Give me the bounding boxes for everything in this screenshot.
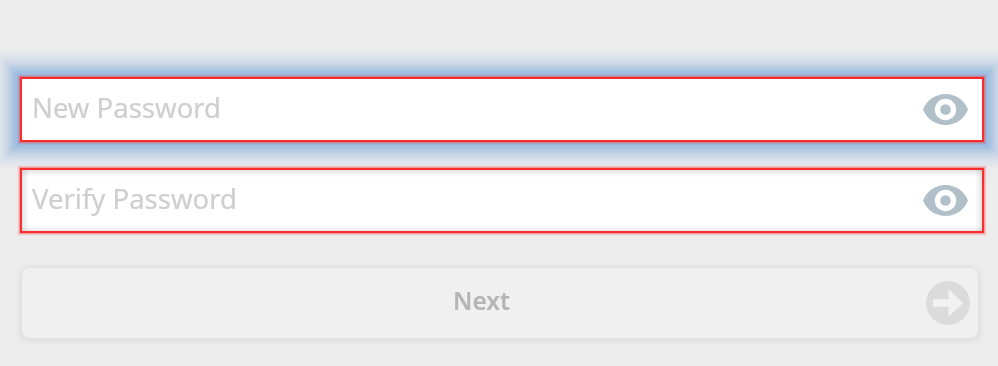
staticText: Verify Password [32, 180, 237, 217]
staticText: New Password [32, 89, 222, 126]
button[interactable]: Verify Password [20, 168, 984, 233]
button[interactable]: Next [926, 281, 970, 325]
staticText: Next [453, 284, 510, 317]
button[interactable]: Show password [922, 177, 968, 223]
button[interactable]: New Password [20, 77, 984, 142]
button[interactable]: Next [22, 268, 978, 338]
button[interactable]: Show password [922, 86, 968, 132]
